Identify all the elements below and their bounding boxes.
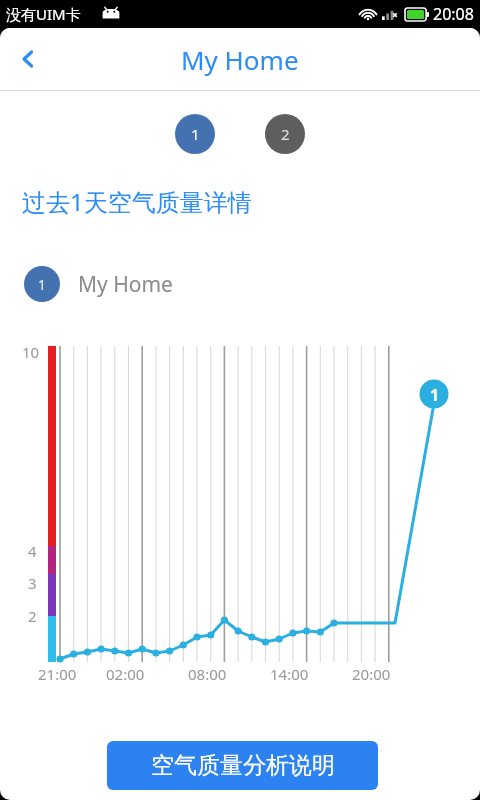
staticText: 过去1天空气质量详情 <box>22 185 252 218</box>
staticText: 14:00 <box>270 664 309 684</box>
button[interactable]: Series 1 value <box>420 380 449 409</box>
staticText: 1 <box>191 124 200 144</box>
staticText: 2 <box>28 606 37 626</box>
button[interactable]: 空气质量分析说明 <box>107 741 378 790</box>
staticText: 没有UIM卡 <box>6 4 81 24</box>
staticText: 21:00 <box>38 664 77 684</box>
button[interactable]: 1 <box>24 266 173 302</box>
button[interactable]: 1 <box>175 114 215 154</box>
staticText: 1 <box>430 384 440 406</box>
staticText: 10 <box>22 342 40 362</box>
staticText: 20:00 <box>352 664 391 684</box>
staticText: 08:00 <box>188 664 227 684</box>
staticText: 02:00 <box>106 664 145 684</box>
button[interactable]: Back <box>0 28 56 90</box>
staticText: 3 <box>28 573 37 593</box>
staticText: My Home <box>181 42 299 77</box>
staticText: My Home <box>78 270 173 299</box>
staticText: 20:08 <box>433 3 474 25</box>
staticText: 1 <box>38 275 47 294</box>
staticText: 2 <box>281 124 290 144</box>
staticText: 空气质量分析说明 <box>151 751 335 780</box>
button[interactable]: 2 <box>265 114 305 154</box>
staticText: 4 <box>28 541 37 561</box>
